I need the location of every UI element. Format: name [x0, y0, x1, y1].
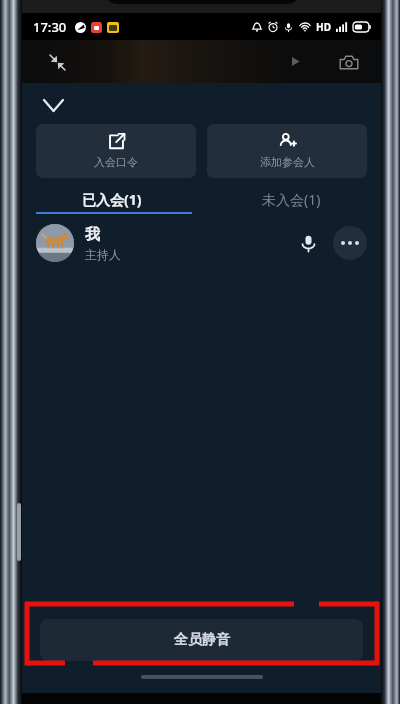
button[interactable]: Camera [333, 46, 365, 78]
button[interactable]: 未入会(1) [201, 184, 381, 214]
staticText: HD [316, 20, 331, 34]
button[interactable]: Minimize [42, 47, 72, 77]
button[interactable]: More options [333, 226, 367, 260]
button[interactable]: 已入会(1) [22, 184, 201, 214]
staticText: 全员静音 [174, 631, 230, 649]
button[interactable]: Collapse [34, 90, 72, 120]
staticText: 我 [85, 225, 100, 244]
staticText: 未入会(1) [262, 190, 321, 209]
button[interactable]: 入会口令 [36, 124, 196, 178]
staticText: 添加参会人 [260, 155, 315, 169]
staticText: 已入会(1) [82, 190, 142, 209]
staticText: 17:30 [33, 18, 67, 36]
button[interactable]: Mute [291, 226, 325, 260]
button[interactable]: 我 [22, 214, 381, 272]
button[interactable]: 添加参会人 [207, 124, 367, 178]
button[interactable]: 全员静音 [40, 619, 363, 661]
staticText: 入会口令 [94, 155, 138, 169]
staticText: 主持人 [85, 247, 121, 262]
